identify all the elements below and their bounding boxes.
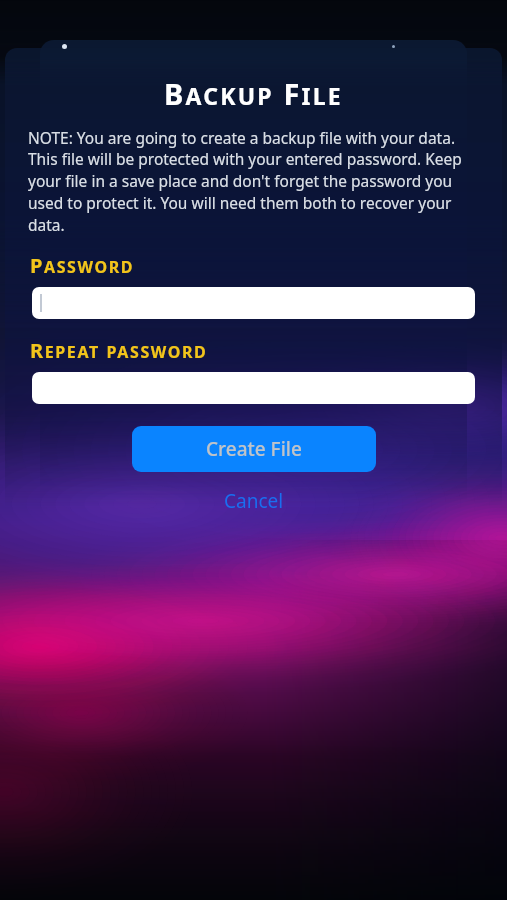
staticText: Cancel bbox=[224, 488, 284, 514]
staticText: Create File bbox=[206, 436, 302, 462]
staticText: NOTE: You are going to create a backup f… bbox=[28, 127, 479, 235]
staticText: PASSWORD bbox=[30, 252, 135, 279]
button[interactable]: Create File bbox=[132, 426, 376, 472]
button[interactable] bbox=[32, 372, 475, 404]
other: status indicator bbox=[62, 44, 67, 49]
staticText: REPEAT PASSWORD bbox=[30, 337, 208, 364]
button[interactable] bbox=[32, 287, 475, 319]
staticText: BACKUP FILE bbox=[164, 74, 343, 113]
button[interactable]: Cancel bbox=[224, 488, 284, 514]
